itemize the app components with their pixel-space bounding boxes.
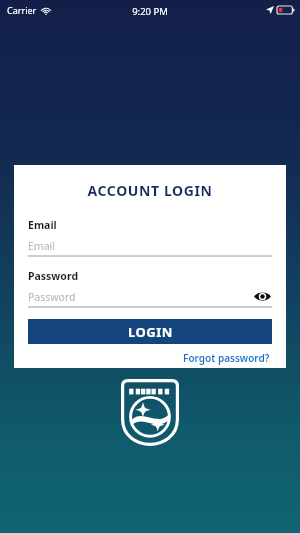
staticText: LOGIN bbox=[128, 323, 173, 341]
staticText: Password bbox=[28, 290, 76, 304]
staticText: ACCOUNT LOGIN bbox=[14, 181, 286, 200]
other: Philips logo bbox=[121, 379, 179, 446]
staticText: 9:20 PM bbox=[0, 5, 300, 18]
staticText: Email bbox=[28, 218, 57, 232]
button[interactable]: LOGIN bbox=[28, 319, 272, 344]
staticText: Carrier bbox=[7, 4, 37, 16]
button[interactable]: Forgot password? bbox=[181, 349, 272, 367]
staticText: Forgot password? bbox=[183, 351, 270, 365]
staticText: Password bbox=[28, 269, 79, 283]
button[interactable]: Show password bbox=[252, 289, 272, 304]
staticText: Email bbox=[28, 239, 55, 253]
